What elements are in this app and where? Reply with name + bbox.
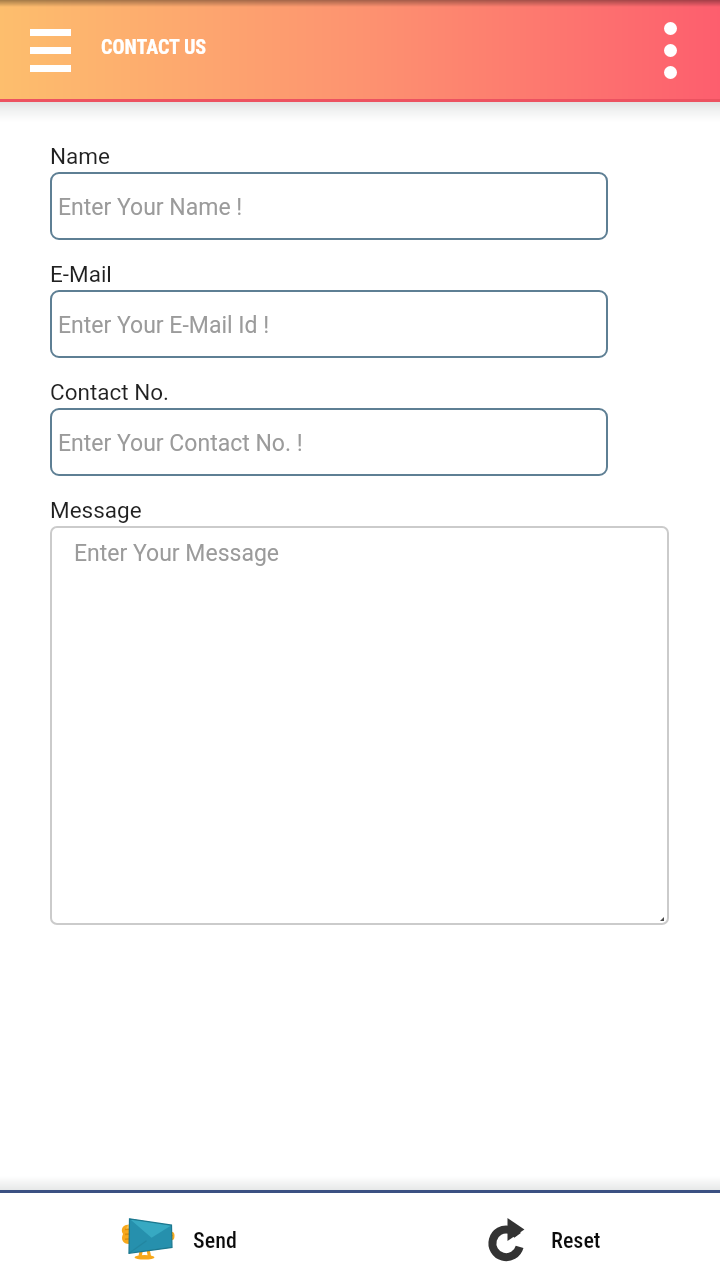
button[interactable]: Enter Your Contact No. ! bbox=[50, 408, 608, 476]
staticText: Enter Your Name ! bbox=[58, 194, 243, 221]
staticText: Send bbox=[193, 1228, 237, 1254]
button[interactable]: Enter Your Name ! bbox=[50, 172, 608, 240]
button[interactable]: More options bbox=[628, 8, 712, 92]
staticText: Contact No. bbox=[50, 379, 170, 405]
button[interactable]: Enter Your E-Mail Id ! bbox=[50, 290, 608, 358]
button[interactable]: Menu bbox=[8, 8, 92, 92]
button[interactable]: Enter Your Message bbox=[50, 526, 669, 925]
staticText: Enter Your Contact No. ! bbox=[58, 430, 303, 457]
staticText: E-Mail bbox=[50, 261, 112, 287]
staticText: CONTACT US bbox=[101, 35, 207, 58]
staticText: Name bbox=[50, 143, 110, 169]
staticText: Enter Your E-Mail Id ! bbox=[58, 312, 270, 339]
staticText: Enter Your Message bbox=[74, 540, 280, 567]
button[interactable]: Send bbox=[86, 1192, 276, 1280]
button[interactable]: Reset bbox=[450, 1192, 640, 1280]
staticText: Reset bbox=[551, 1228, 601, 1254]
staticText: Message bbox=[50, 497, 142, 523]
